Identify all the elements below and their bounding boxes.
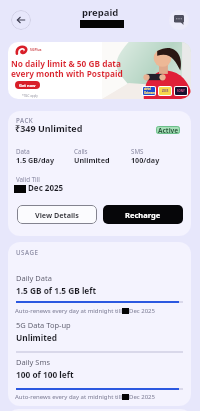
staticText: prepaid xyxy=(82,6,119,19)
staticText: Dec 2025 xyxy=(129,393,155,401)
staticText: Valid Till xyxy=(16,175,40,183)
staticText: 100/day xyxy=(131,155,160,165)
staticText: Data xyxy=(16,147,30,155)
staticText: Dec 2025 xyxy=(129,307,155,315)
staticText: Daily Data xyxy=(16,273,52,283)
staticText: No daily limit & 50 GB data xyxy=(11,58,121,69)
staticText: Get now xyxy=(19,83,36,88)
staticText: Calls xyxy=(74,147,88,155)
staticText: Unlimited xyxy=(74,155,110,165)
staticText: 5G Data Top-up xyxy=(16,320,71,330)
staticText: Dec 2025 xyxy=(28,182,64,193)
staticText: SONY xyxy=(177,89,185,93)
button[interactable]: Chat support xyxy=(169,10,189,30)
staticText: ZEE5 xyxy=(162,89,169,93)
staticText: airtel Xstream xyxy=(144,87,155,95)
button[interactable]: airtel Xstream xyxy=(8,42,191,99)
button[interactable]: Get now xyxy=(15,81,40,89)
button[interactable]: Active xyxy=(156,126,180,134)
staticText: 1.5 GB/day xyxy=(16,155,55,165)
staticText: USAGE xyxy=(16,248,39,256)
staticText: Daily Sms xyxy=(16,357,51,367)
staticText: *T&C apply xyxy=(22,94,38,98)
staticText: Unlimited xyxy=(16,332,57,343)
staticText: PACK xyxy=(16,116,34,124)
staticText: every month with Postpaid xyxy=(11,68,123,79)
staticText: 1.5 GB of 1.5 GB left xyxy=(16,285,97,296)
staticText: Auto-renews every day at midnight till xyxy=(15,307,122,315)
staticText: ₹349 Unlimited xyxy=(15,122,83,134)
button[interactable]: View Details xyxy=(17,205,97,224)
staticText: Auto-renews every day at midnight till xyxy=(15,393,122,401)
staticText: View Details xyxy=(35,210,79,220)
staticText: Recharge xyxy=(125,210,161,220)
staticText: SMS xyxy=(131,147,144,155)
staticText: 5GPlus xyxy=(30,47,42,52)
button[interactable]: Recharge xyxy=(103,205,183,224)
button[interactable]: Back xyxy=(11,10,31,30)
staticText: 100 of 100 left xyxy=(16,369,74,380)
staticText: Active xyxy=(158,126,179,134)
